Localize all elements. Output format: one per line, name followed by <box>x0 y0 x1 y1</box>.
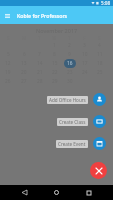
staticText: Koble for Professors <box>17 12 68 19</box>
staticText: 16 <box>67 60 73 67</box>
staticText: Create Event <box>58 141 86 147</box>
button[interactable]: Create Event <box>56 140 88 148</box>
staticText: Add Office Hours <box>49 97 86 103</box>
button[interactable]: Back <box>17 185 32 200</box>
staticText: 5:08 <box>101 0 111 6</box>
button[interactable]: Menu <box>3 11 12 20</box>
button[interactable]: Create Class <box>93 115 106 128</box>
button[interactable]: Close menu <box>90 162 107 179</box>
staticText: Create Class <box>59 119 86 125</box>
button[interactable]: Recent apps <box>81 185 96 200</box>
button[interactable]: Add Office Hours <box>47 96 88 104</box>
button[interactable]: Create Class <box>57 118 88 126</box>
button[interactable]: Create Event <box>93 137 106 150</box>
button[interactable]: Home <box>49 185 64 200</box>
button[interactable]: Add Office Hours <box>93 93 106 106</box>
